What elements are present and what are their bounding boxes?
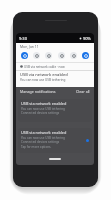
staticText: You can now use USB tethering bbox=[21, 136, 65, 140]
button[interactable]: Manage notifications bbox=[20, 89, 56, 94]
staticText: USB via network enabled bbox=[21, 101, 67, 106]
staticText: Tap for more options. bbox=[21, 145, 52, 149]
button[interactable]: Clear all bbox=[76, 89, 90, 94]
staticText: USB via network cable · now bbox=[24, 65, 65, 69]
staticText: Connected devices settings bbox=[21, 140, 60, 144]
button[interactable]: USB via network cable · now bbox=[16, 63, 94, 82]
staticText: You can now use USB tethering bbox=[21, 107, 65, 111]
button[interactable]: USB via network enabled bbox=[18, 99, 92, 122]
button[interactable]: Internet bbox=[21, 52, 28, 59]
staticText: Clear all bbox=[76, 89, 90, 94]
staticText: Manage notifications bbox=[20, 89, 56, 94]
staticText: USB via network enabled bbox=[21, 130, 67, 135]
button[interactable]: Auto rotate bbox=[70, 52, 77, 59]
button[interactable]: Flashlight bbox=[58, 52, 65, 59]
button[interactable]: USB via network enabled bbox=[18, 128, 92, 153]
staticText: You can now use USB tethering bbox=[20, 78, 66, 82]
staticText: 90% bbox=[83, 36, 91, 41]
staticText: Mon, Jan 11 bbox=[20, 44, 39, 49]
button[interactable]: Battery saver bbox=[82, 52, 89, 59]
button[interactable]: Do not disturb bbox=[45, 52, 52, 59]
staticText: 9:30 bbox=[19, 36, 27, 41]
button[interactable]: Bluetooth bbox=[33, 52, 40, 59]
staticText: USB via network enabled bbox=[20, 72, 68, 77]
staticText: Connected devices settings bbox=[21, 111, 60, 115]
